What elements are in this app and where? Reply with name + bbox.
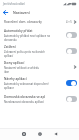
button[interactable]: Návrhy aplikací: [0, 75, 79, 91]
staticText: Automaticky zobrazovat doporučené aplika…: [4, 82, 49, 90]
button[interactable]: Automaticky přidat: [0, 27, 79, 43]
staticText: Nastavení velikosti a vzhledu ikon: [4, 66, 39, 74]
button[interactable]: Home: [32, 128, 48, 140]
button[interactable]: Back: [48, 128, 64, 140]
staticText: Návrhy aplikací: [4, 77, 27, 81]
button[interactable]: Domovská obrazovka ve apl: [0, 91, 79, 107]
staticText: Automaticky přidat: [4, 29, 33, 33]
button[interactable]: Back: [0, 7, 11, 17]
staticText: Domovská obrazovka ve apl: [4, 95, 46, 99]
button[interactable]: Zatížení: [0, 43, 79, 59]
button[interactable]: Toggle off: [66, 48, 77, 54]
staticText: Nastavení: [13, 10, 30, 15]
button[interactable]: Toggle on: [66, 80, 77, 86]
staticText: Rozvržení dom. obrazovky: [4, 20, 42, 24]
button[interactable]: Rozvržení dom. obrazovky: [0, 17, 79, 27]
staticText: Nezobrazovat obrazovku aplikací: [4, 100, 44, 104]
staticText: Jen tísňová volání: [3, 2, 25, 6]
button[interactable]: Recent apps: [16, 128, 32, 140]
staticText: Zobrazení počtu zpráv na ikonách aplikac…: [4, 50, 45, 58]
button[interactable]: Toggle off: [66, 96, 77, 102]
button[interactable]: Toggle off: [66, 32, 77, 38]
staticText: Automaticky přidává nové aplikace na obr…: [4, 34, 50, 42]
staticText: Ikony aplikací: [4, 61, 25, 65]
staticText: 4 × 5: [66, 20, 72, 24]
staticText: Zatížení: [4, 45, 16, 49]
button[interactable]: Ikony aplikací: [0, 59, 79, 75]
